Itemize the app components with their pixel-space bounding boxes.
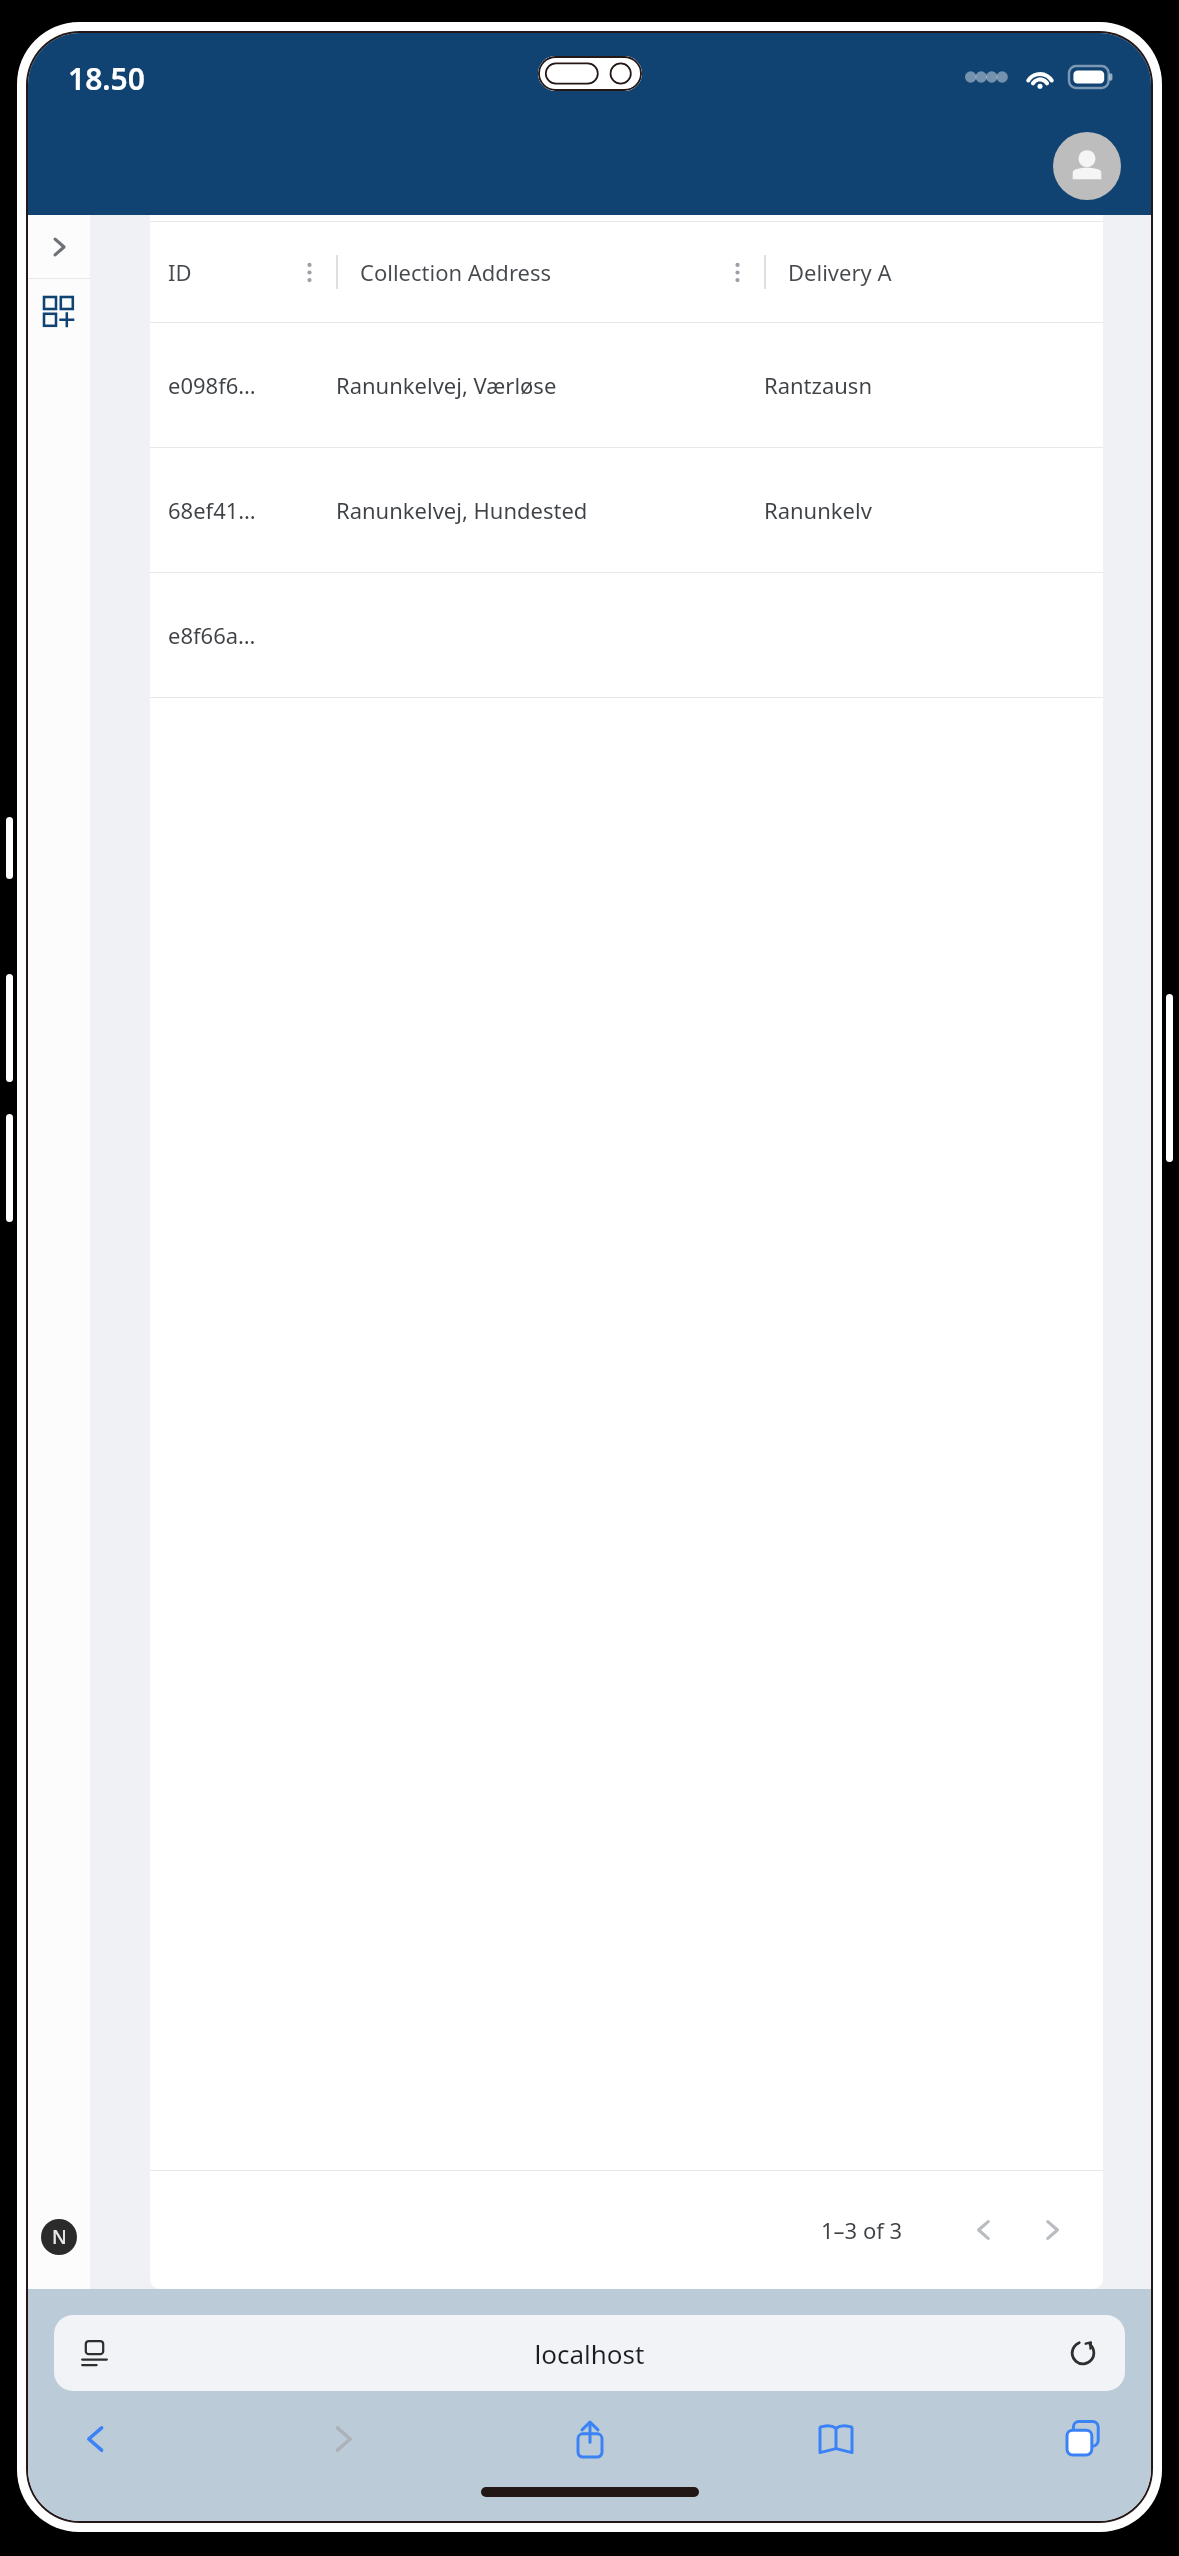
staticText: Ranunkelv: [764, 495, 872, 525]
staticText: e098f6…: [168, 370, 256, 400]
button[interactable]: Bookmarks: [798, 2401, 874, 2477]
button[interactable]: Tabs: [1045, 2401, 1121, 2477]
button[interactable]: Back: [58, 2401, 134, 2477]
button[interactable]: Dev tools: [41, 2219, 77, 2255]
staticText: Ranunkelvej, Hundested: [336, 495, 588, 525]
button[interactable]: Previous page: [957, 2203, 1011, 2257]
button[interactable]: Expand menu: [28, 215, 90, 278]
staticText: Delivery A: [788, 257, 892, 287]
button[interactable]: Reload: [1063, 2333, 1103, 2373]
staticText: 18.50: [68, 58, 145, 99]
staticText: 68ef41…: [168, 495, 256, 525]
staticText: ID: [168, 257, 192, 287]
button[interactable]: e8f66a…: [150, 573, 1103, 697]
button[interactable]: Collection Address column options: [724, 259, 750, 285]
staticText: localhost: [116, 2336, 1063, 2371]
staticText: e8f66a…: [168, 620, 256, 650]
staticText: Collection Address: [360, 257, 552, 287]
staticText: 1–3 of 3: [821, 2215, 903, 2245]
button[interactable]: ID column options: [296, 259, 322, 285]
button[interactable]: Share: [552, 2401, 628, 2477]
button[interactable]: Account: [1053, 132, 1121, 200]
button[interactable]: e098f6…: [150, 323, 1103, 447]
button[interactable]: Forward: [305, 2401, 381, 2477]
staticText: Ranunkelvej, Værløse: [336, 370, 557, 400]
button[interactable]: Page settings: [76, 2333, 116, 2373]
button[interactable]: Next page: [1025, 2203, 1079, 2257]
staticText: N: [52, 2224, 67, 2250]
staticText: Rantzausn: [764, 370, 872, 400]
button[interactable]: Add dashboard: [28, 279, 90, 345]
button[interactable]: Page settings: [54, 2315, 1125, 2391]
button[interactable]: 68ef41…: [150, 448, 1103, 572]
